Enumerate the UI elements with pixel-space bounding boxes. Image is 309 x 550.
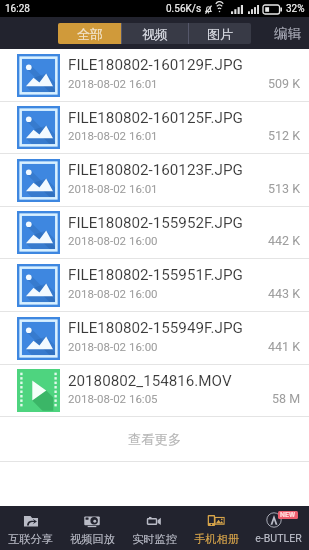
staticText: FILE180802-160129F.JPG xyxy=(68,56,243,74)
button[interactable]: 20180802_154816.MOV xyxy=(0,365,309,416)
button[interactable]: 手机相册 xyxy=(185,506,247,550)
staticText: 实时监控 xyxy=(132,532,177,546)
button[interactable]: 实时监控 xyxy=(123,506,185,550)
staticText: 20180802_154816.MOV xyxy=(68,372,232,390)
button[interactable]: FILE180802-155951F.JPG xyxy=(0,259,309,311)
button[interactable]: FILE180802-160125F.JPG xyxy=(0,102,309,153)
button[interactable]: FILE180802-160129F.JPG xyxy=(0,49,309,101)
staticText: 全部 xyxy=(77,26,103,42)
staticText: 编辑 xyxy=(274,25,301,42)
staticText: FILE180802-155952F.JPG xyxy=(68,214,243,232)
button[interactable]: FILE180802-160123F.JPG xyxy=(0,154,309,206)
staticText: 513 K xyxy=(268,181,301,196)
staticText: 手机相册 xyxy=(194,532,239,546)
staticText: 视频 xyxy=(142,26,168,42)
staticText: 图片 xyxy=(207,26,233,42)
staticText: 442 K xyxy=(268,233,301,248)
staticText: 2018-08-02 16:00 xyxy=(68,340,158,353)
staticText: 视频回放 xyxy=(70,532,115,546)
staticText: 512 K xyxy=(268,128,301,143)
staticText: 443 K xyxy=(268,286,301,301)
button[interactable]: e-BUTLER xyxy=(247,506,309,550)
staticText: FILE180802-160125F.JPG xyxy=(68,109,243,127)
staticText: 2018-08-02 16:00 xyxy=(68,287,158,300)
staticText: FILE180802-160123F.JPG xyxy=(68,161,243,179)
staticText: 2018-08-02 16:01 xyxy=(68,129,158,142)
staticText: 58 M xyxy=(272,391,301,406)
staticText: 2018-08-02 16:00 xyxy=(68,234,158,247)
staticText: NEW xyxy=(280,511,296,519)
staticText: 2018-08-02 16:01 xyxy=(68,182,158,195)
staticText: 2018-08-02 16:01 xyxy=(68,77,158,90)
button[interactable]: 图片 xyxy=(189,23,251,44)
button[interactable]: FILE180802-155952F.JPG xyxy=(0,207,309,258)
staticText: 32% xyxy=(286,3,305,15)
staticText: e-BUTLER xyxy=(255,532,302,544)
button[interactable]: 视频回放 xyxy=(61,506,123,550)
staticText: 0.56K/s xyxy=(166,3,202,15)
staticText: 查看更多 xyxy=(128,431,182,448)
staticText: FILE180802-155949F.JPG xyxy=(68,319,243,337)
staticText: 16:28 xyxy=(5,3,30,15)
button[interactable]: 查看更多 xyxy=(0,417,309,461)
button[interactable]: 互联分享 xyxy=(0,506,61,550)
button[interactable]: 视频 xyxy=(122,23,188,44)
staticText: 2018-08-02 16:05 xyxy=(68,392,158,405)
staticText: 509 K xyxy=(268,76,301,91)
staticText: 441 K xyxy=(268,339,301,354)
button[interactable]: 全部 xyxy=(58,23,121,44)
button[interactable]: FILE180802-155949F.JPG xyxy=(0,312,309,364)
staticText: 互联分享 xyxy=(8,532,53,546)
staticText: FILE180802-155951F.JPG xyxy=(68,266,243,284)
button[interactable]: 编辑 xyxy=(274,25,301,42)
